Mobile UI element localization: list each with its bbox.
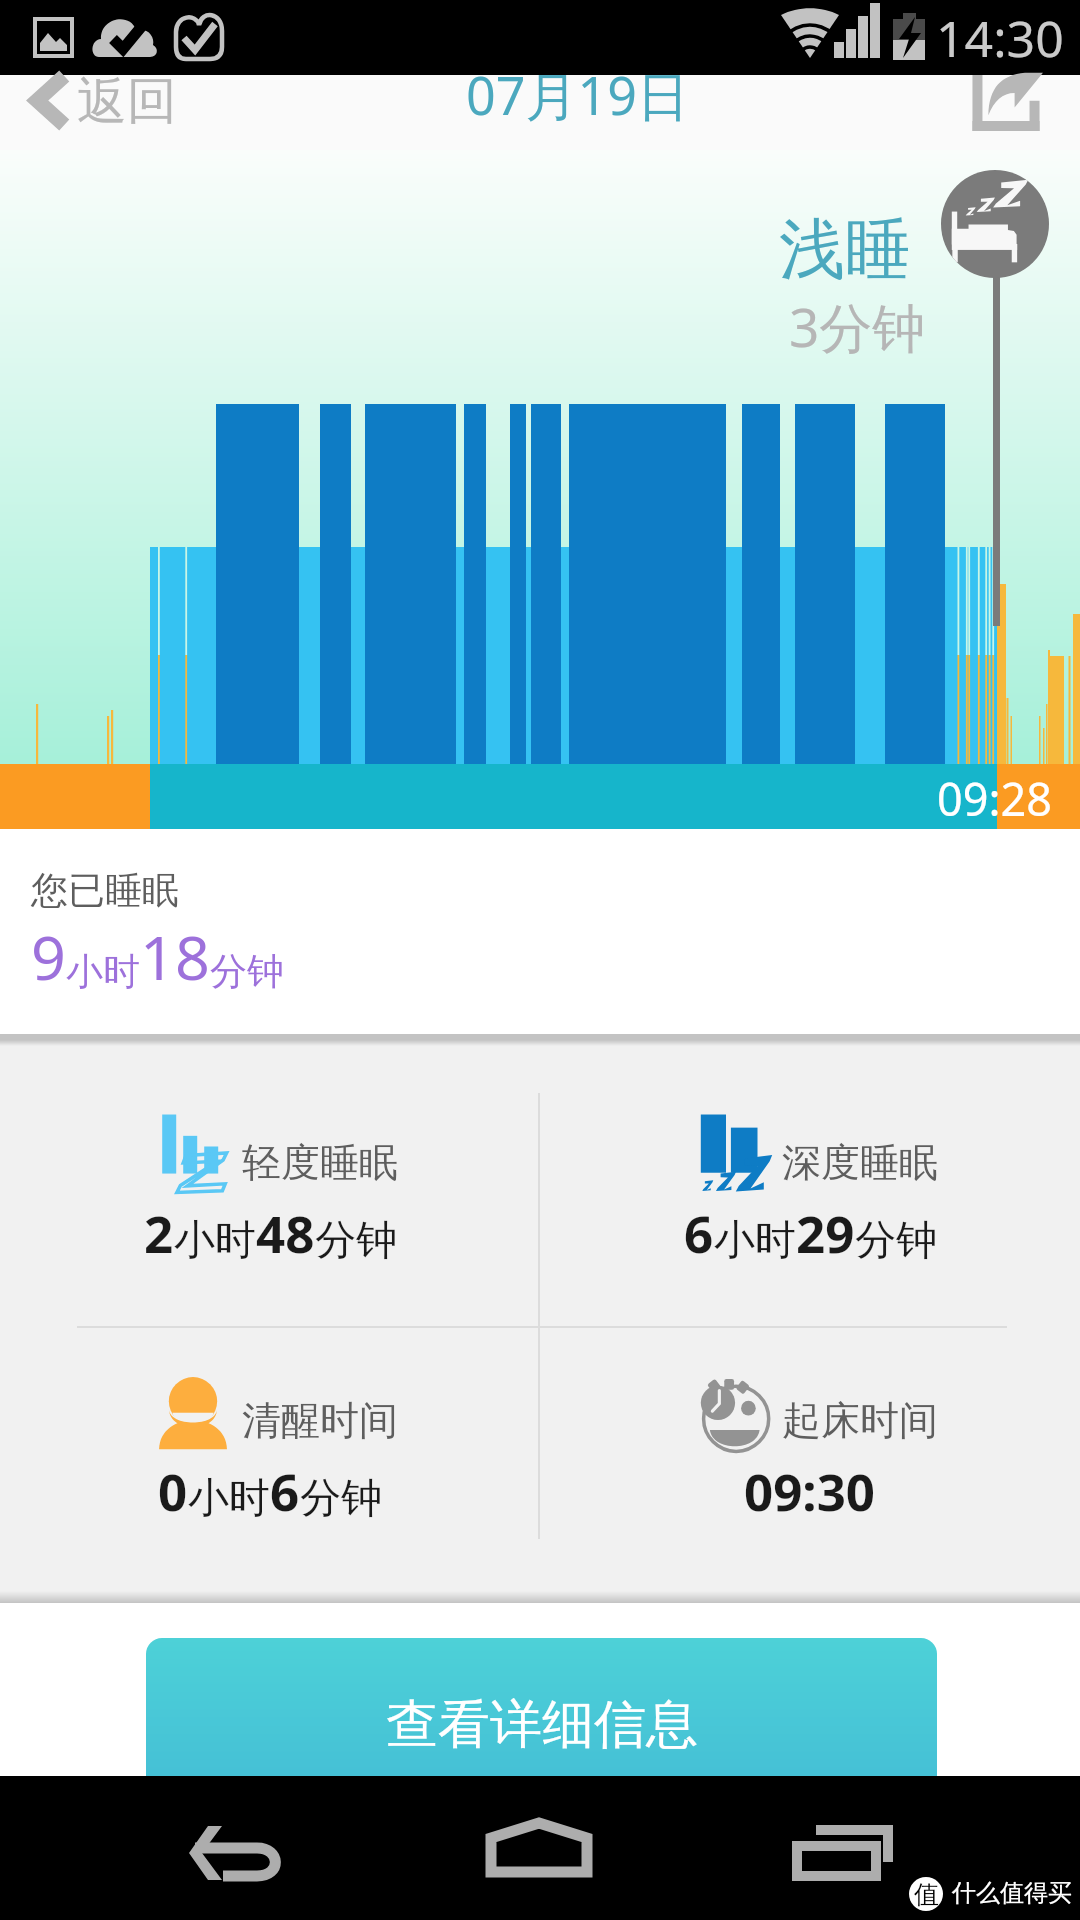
button[interactable]: Sleep stage [941,170,1049,278]
button[interactable]: Recents [786,1820,901,1882]
button[interactable]: Home [480,1816,600,1880]
staticText: 轻度睡眠 [242,1138,398,1187]
staticText: 6 [270,1456,300,1525]
staticText: 深度睡眠 [782,1138,938,1187]
staticText: 值 [914,1879,939,1910]
staticText: 3分钟 [789,290,926,362]
staticText: 什么值得买 [952,1878,1072,1908]
button[interactable]: 深度睡眠 [540,1034,1080,1318]
button[interactable]: 清醒时间 [0,1292,540,1576]
staticText: 清醒时间 [242,1396,398,1445]
staticText: 返回 [77,70,177,133]
button[interactable]: Back [175,1812,305,1884]
staticText: 18 [140,915,210,998]
button[interactable]: 轻度睡眠 [0,1034,540,1318]
staticText: 您已睡眠 [31,867,179,914]
staticText: 07月19日 [466,59,689,130]
staticText: 小时 [714,1215,796,1267]
staticText: 9 [31,915,66,998]
staticText: 小时 [188,1473,270,1525]
button[interactable]: 起床时间 [540,1292,1080,1576]
staticText: 0 [158,1456,188,1525]
staticText: 分钟 [315,1215,397,1267]
staticText: 小时 [66,948,140,995]
staticText: 48 [256,1198,315,1267]
staticText: 29 [796,1198,855,1267]
staticText: 起床时间 [782,1396,938,1445]
button[interactable]: 返回 [14,75,171,150]
button[interactable]: 查看详细信息 [146,1638,937,1811]
staticText: 09:30 [744,1456,876,1525]
staticText: 分钟 [855,1215,937,1267]
staticText: 小时 [174,1215,256,1267]
staticText: 09:28 [937,768,1053,829]
staticText: 14:30 [936,4,1064,72]
staticText: 2 [144,1198,174,1267]
staticText: 查看详细信息 [386,1692,698,1758]
staticText: 6 [684,1198,714,1267]
staticText: 分钟 [210,948,284,995]
staticText: 分钟 [300,1473,382,1525]
button[interactable]: Share [963,75,1049,131]
staticText: 浅睡 [779,208,911,291]
